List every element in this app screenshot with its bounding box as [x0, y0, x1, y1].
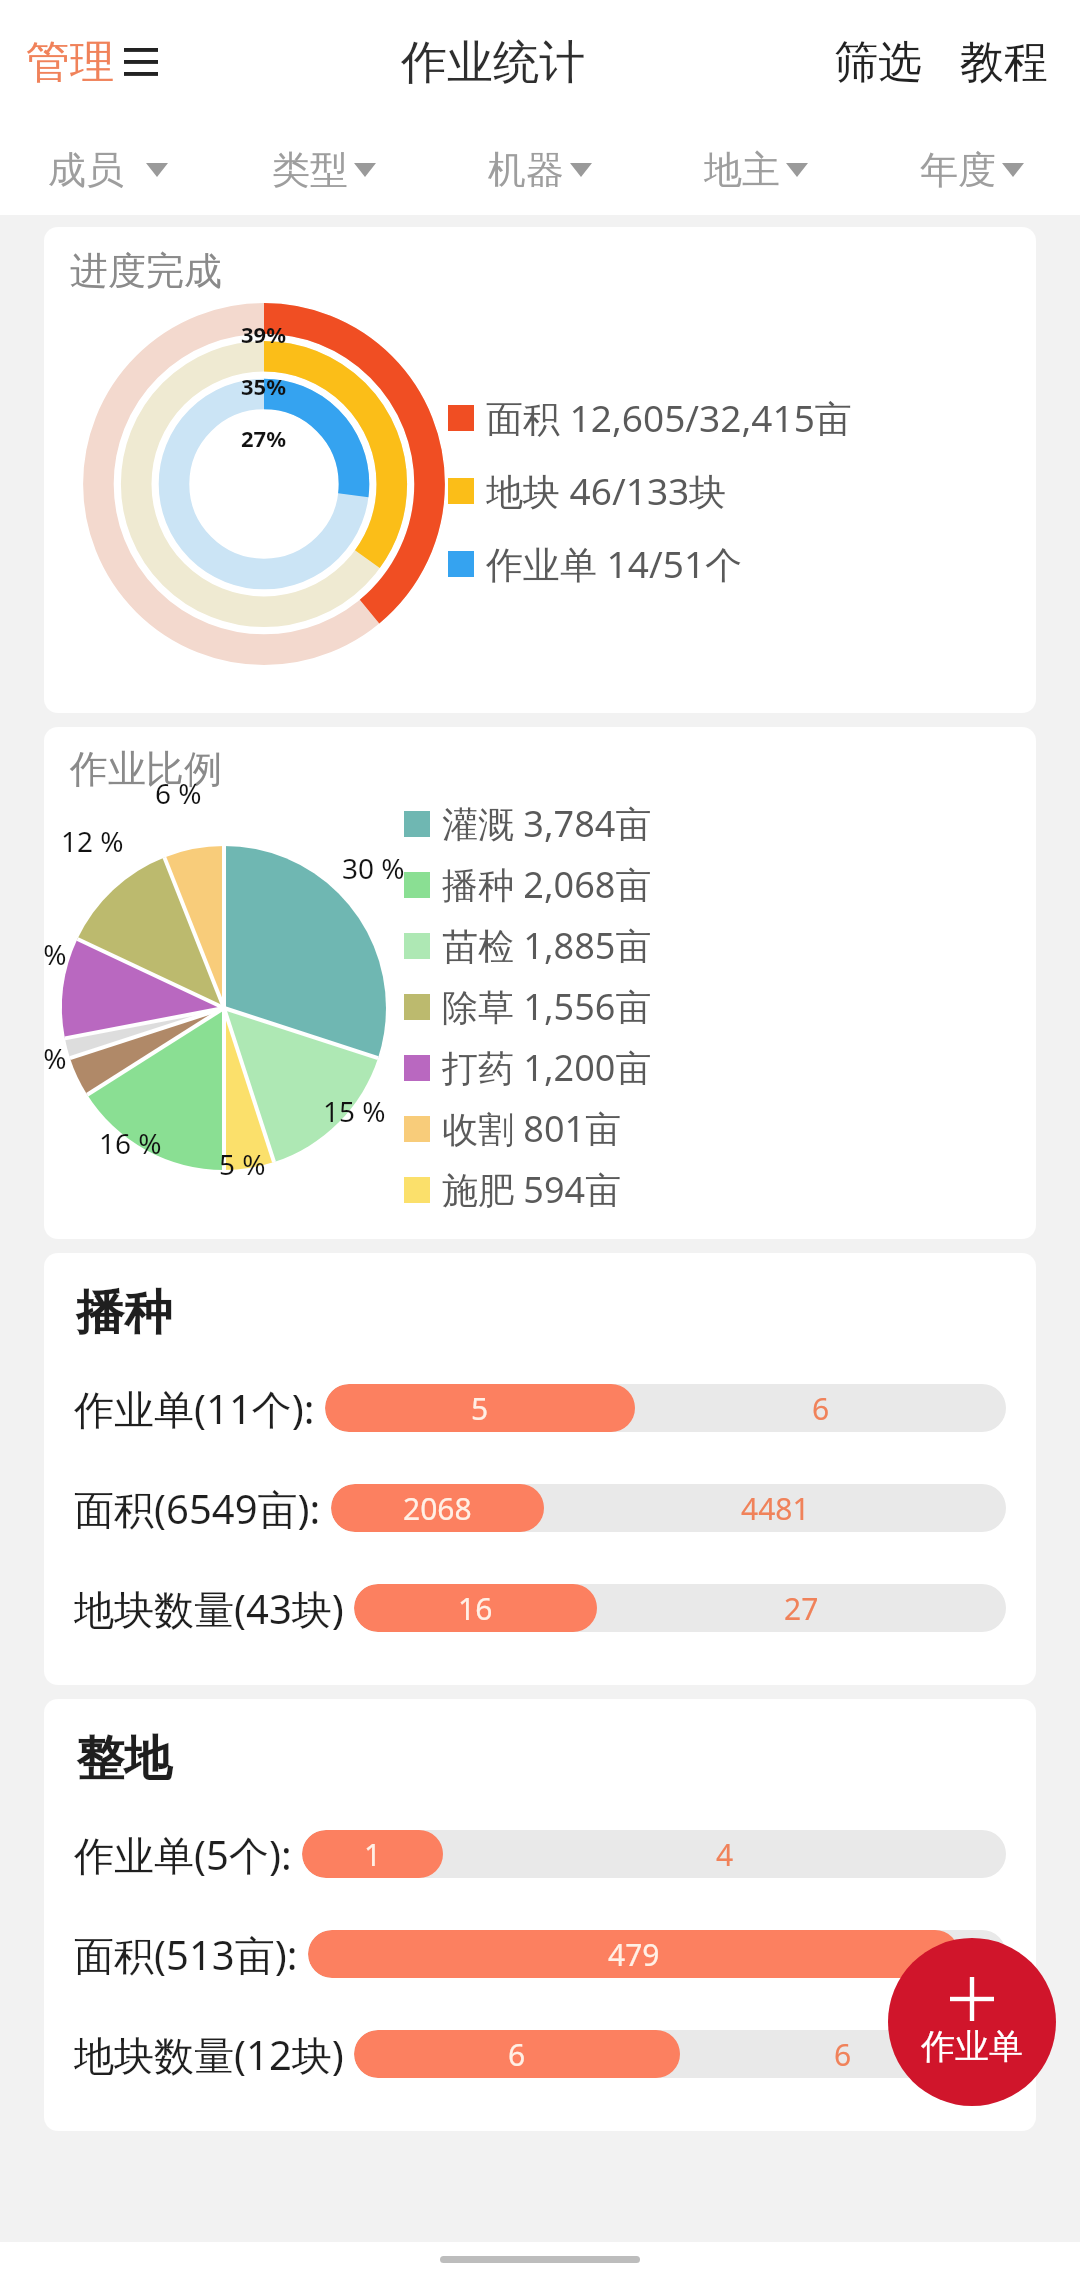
staticText: 除草 1,556亩: [442, 982, 652, 1031]
staticText: 34: [965, 1934, 1000, 1975]
staticText: 6: [834, 2034, 852, 2075]
staticText: 播种: [76, 1283, 172, 1343]
button[interactable]: 教程: [954, 29, 1054, 96]
staticText: 地块数量(43块): [74, 1581, 344, 1636]
button[interactable]: 筛选: [828, 29, 928, 96]
staticText: 5 %: [219, 1145, 266, 1183]
staticText: 灌溉 3,784亩: [442, 799, 652, 848]
staticText: 地块数量(12块): [74, 2027, 344, 2082]
staticText: 作业单(11个):: [74, 1381, 315, 1436]
staticText: 年度: [920, 146, 996, 194]
staticText: 打药 1,200亩: [442, 1043, 652, 1092]
button[interactable]: 机器: [432, 125, 648, 215]
staticText: 6 %: [155, 774, 202, 812]
staticText: 面积 12,605/32,415亩: [486, 392, 852, 443]
staticText: 收割 801亩: [442, 1104, 622, 1153]
button[interactable]: 新建作业单: [888, 1938, 1056, 2106]
staticText: 类型: [272, 146, 348, 194]
staticText: 机器: [488, 146, 564, 194]
staticText: 苗检 1,885亩: [442, 921, 652, 970]
staticText: 4481: [741, 1488, 810, 1529]
staticText: 进度完成: [70, 247, 222, 295]
button[interactable]: 成员: [0, 125, 216, 215]
staticText: 作业统计: [401, 34, 585, 92]
staticText: 作业单 14/51个: [486, 538, 743, 589]
staticText: 播种 2,068亩: [442, 860, 652, 909]
staticText: 479: [608, 1934, 660, 1975]
staticText: 39%: [241, 319, 287, 349]
staticText: 作业单: [921, 2025, 1023, 2068]
staticText: 2068: [403, 1488, 472, 1529]
staticText: 地主: [704, 146, 780, 194]
staticText: 地块 46/133块: [486, 465, 727, 516]
staticText: 1: [364, 1834, 382, 1875]
staticText: 面积(6549亩):: [74, 1481, 321, 1536]
staticText: 管理: [26, 35, 114, 90]
staticText: 27: [784, 1588, 819, 1629]
button[interactable]: 年度: [864, 125, 1080, 215]
staticText: 5: [471, 1388, 489, 1429]
staticText: 16: [458, 1588, 493, 1629]
button[interactable]: 地主: [648, 125, 864, 215]
staticText: 作业比例: [70, 745, 222, 793]
staticText: 施肥 594亩: [442, 1165, 622, 1214]
staticText: 整地: [76, 1729, 172, 1789]
staticText: 作业单(5个):: [74, 1827, 292, 1882]
staticText: 35%: [241, 371, 287, 401]
staticText: 6: [812, 1388, 830, 1429]
staticText: 16 %: [99, 1124, 162, 1162]
staticText: 6: [508, 2034, 526, 2075]
staticText: 30 %: [342, 849, 405, 887]
staticText: 4: [716, 1834, 734, 1875]
staticText: 4 %: [44, 1039, 67, 1077]
button[interactable]: 管理: [26, 27, 158, 98]
staticText: 15 %: [323, 1092, 386, 1130]
staticText: 成员: [48, 146, 124, 194]
button[interactable]: 类型: [216, 125, 432, 215]
staticText: 12 %: [61, 822, 124, 860]
staticText: 27%: [241, 423, 287, 453]
staticText: 面积(513亩):: [74, 1927, 298, 1982]
staticText: 10 %: [44, 935, 67, 973]
